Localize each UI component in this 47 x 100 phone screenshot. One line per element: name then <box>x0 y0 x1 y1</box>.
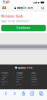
staticText: Blog <box>16 81 19 83</box>
button[interactable]: Reload <box>40 5 46 11</box>
button[interactable]: Company <box>16 72 31 74</box>
staticText: Security <box>31 83 37 85</box>
button[interactable]: Contact <box>16 83 31 85</box>
staticText: Pricing <box>2 76 7 78</box>
button[interactable]: Product <box>2 72 16 74</box>
staticText: Cookies <box>31 79 37 80</box>
staticText: Contact <box>16 83 21 85</box>
button[interactable]: Blog <box>16 81 31 83</box>
button[interactable]: Page settings <box>1 5 7 11</box>
staticText: Status <box>2 83 6 85</box>
button[interactable]: Cookies <box>31 79 45 80</box>
staticText: Company <box>16 72 23 74</box>
staticText: Privacy <box>31 74 37 76</box>
staticText: Docs <box>2 79 6 80</box>
staticText: About us <box>16 74 22 76</box>
button[interactable]: Legal <box>31 72 45 74</box>
button[interactable]: Terms <box>31 76 45 78</box>
staticText: Features <box>2 74 9 76</box>
staticText: Careers <box>16 76 23 78</box>
staticText: Continue <box>16 26 30 30</box>
button[interactable]: Pricing <box>2 76 16 78</box>
button[interactable]: Share <box>19 89 28 97</box>
button[interactable]: Licence <box>31 81 45 83</box>
button[interactable]: About us <box>16 74 31 76</box>
button[interactable]: Bookmarks <box>28 89 37 97</box>
button[interactable]: Continue <box>1 25 46 31</box>
button[interactable]: Careers <box>16 76 31 78</box>
button[interactable]: Status <box>2 83 16 85</box>
staticText: 9:41 <box>3 1 10 4</box>
staticText: LOGOTYPE <box>18 66 32 69</box>
button[interactable]: Docs <box>2 79 16 80</box>
button[interactable]: Press <box>16 79 31 80</box>
staticText: Welcome back <box>1 15 23 18</box>
staticText: Legal <box>31 72 35 74</box>
staticText: Sign in to continue <box>1 19 29 23</box>
button[interactable]: Back <box>1 89 10 97</box>
button[interactable]: Features <box>2 74 16 76</box>
staticText: Licence <box>31 81 37 83</box>
button[interactable]: Forward <box>10 89 19 97</box>
staticText: AA <box>2 6 6 10</box>
staticText: Support <box>2 81 8 83</box>
button[interactable]: Support <box>2 81 16 83</box>
staticText: example.com <box>17 6 33 10</box>
staticText: Press <box>16 79 21 80</box>
staticText: Product <box>2 72 9 74</box>
button[interactable]: Privacy <box>31 74 45 76</box>
button[interactable]: Security <box>31 83 45 85</box>
staticText: Terms <box>31 76 36 78</box>
button[interactable]: Tabs <box>37 89 45 97</box>
